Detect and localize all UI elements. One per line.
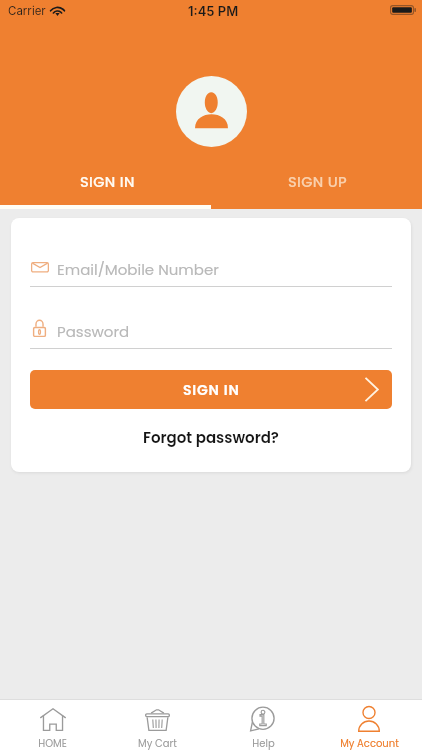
staticText: Email/Mobile Number	[57, 259, 219, 280]
staticText: SIGN UP	[288, 172, 348, 192]
staticText: My Account	[340, 736, 399, 750]
staticText: Carrier	[8, 4, 46, 18]
button[interactable]: My Cart	[105, 700, 210, 750]
staticText: Help	[252, 736, 275, 750]
staticText: My Cart	[138, 736, 177, 750]
staticText: 1:45 PM	[188, 3, 239, 19]
button[interactable]: SIGN UP	[211, 165, 422, 209]
button[interactable]: Help	[210, 700, 316, 750]
button[interactable]: Forgot password?	[137, 424, 285, 451]
button[interactable]: SIGN IN	[0, 165, 211, 209]
button[interactable]: My Account	[316, 700, 422, 750]
staticText: Forgot password?	[143, 427, 279, 448]
button[interactable]: SIGN IN	[30, 370, 392, 409]
staticText: Password	[57, 321, 130, 342]
staticText: SIGN IN	[183, 380, 240, 400]
button[interactable]: HOME	[0, 700, 105, 750]
staticText: SIGN IN	[80, 172, 135, 192]
staticText: HOME	[38, 736, 67, 750]
